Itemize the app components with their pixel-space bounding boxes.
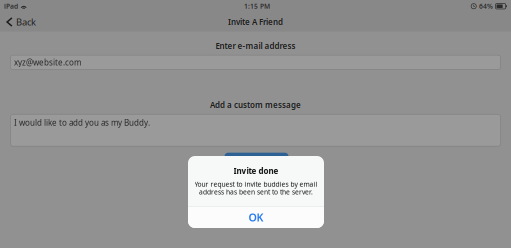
staticText: OK [248,210,263,224]
staticText: Enter e-mail address [215,40,295,51]
staticText: 64% [479,2,493,11]
staticText: Add a custom message [210,100,301,110]
staticText: xyz@website.com [14,57,81,68]
staticText: Invite A Friend [228,17,283,27]
staticText: address has been sent to the server. [199,187,313,196]
staticText: Your request to invite buddies by email [194,180,317,188]
button[interactable]: OK [188,207,324,228]
staticText: Invite done [233,165,278,176]
staticText: iPad [4,2,18,11]
staticText: Back [16,16,36,28]
staticText: I would like to add you as my Buddy. [14,117,150,128]
staticText: Invite [245,155,267,166]
button[interactable]: Invite [224,153,288,169]
staticText: 1:15 PM [244,2,270,11]
button[interactable]: Back [0,12,42,31]
